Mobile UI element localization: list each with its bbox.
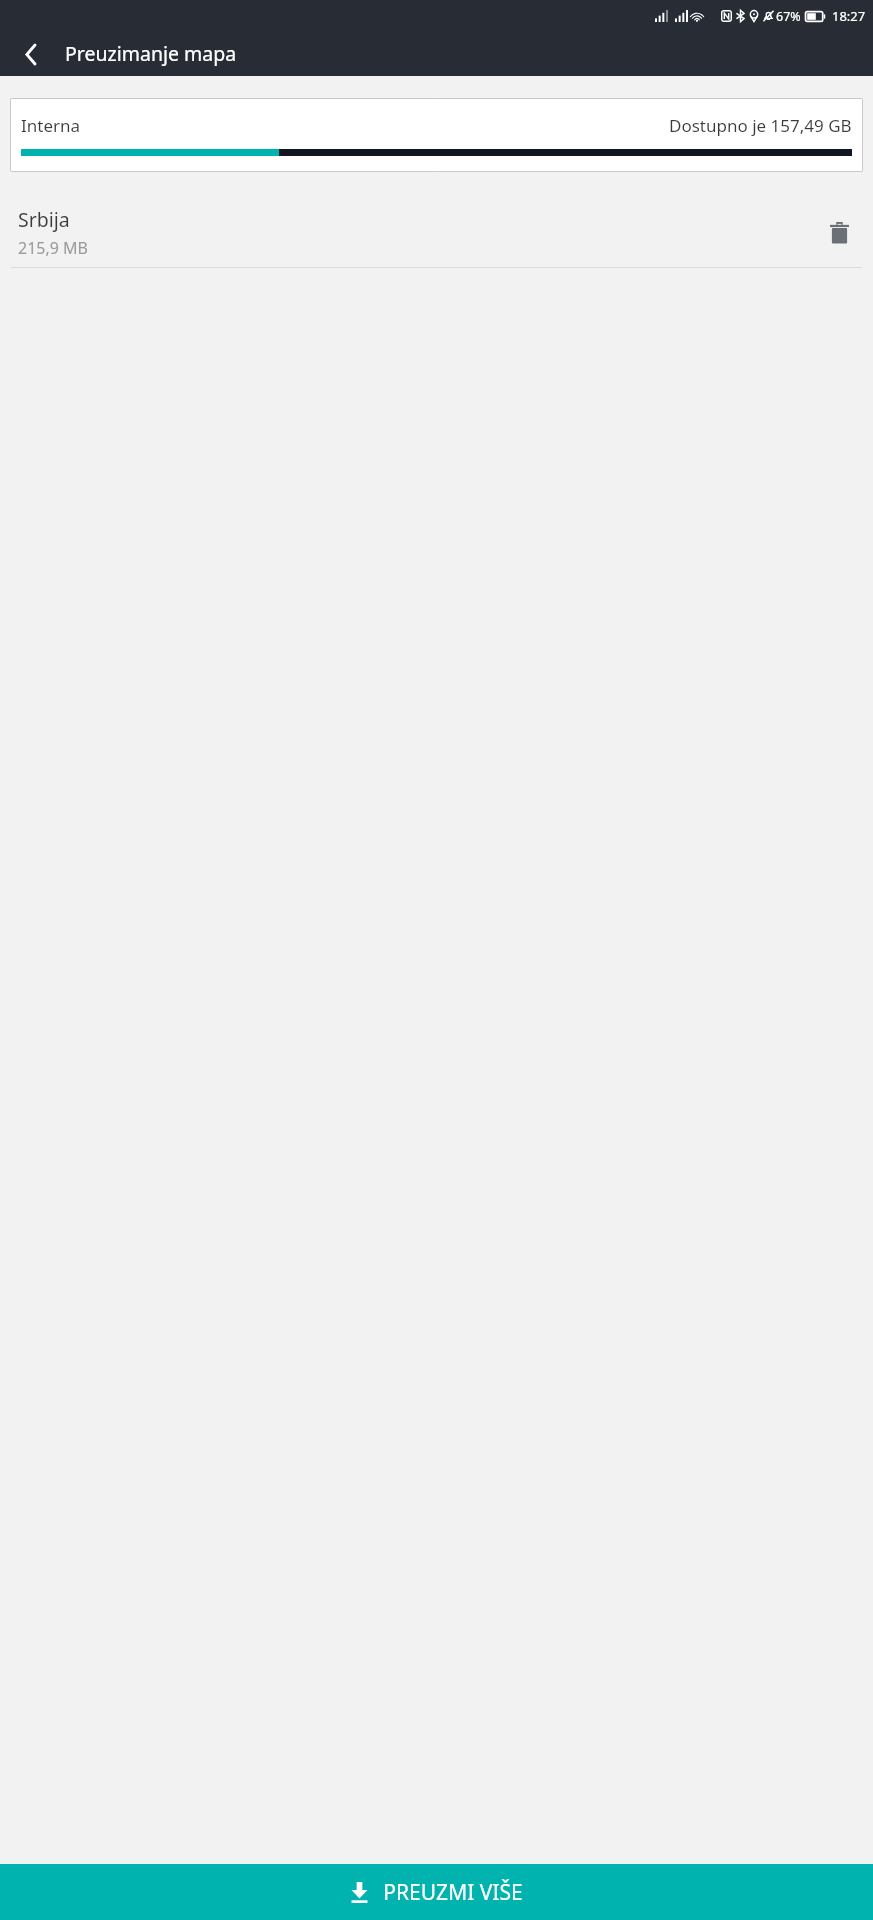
button[interactable]: Interna — [10, 98, 863, 172]
staticText: 67% — [776, 8, 801, 25]
button[interactable]: PREUZMI VIŠE — [0, 1864, 873, 1920]
button[interactable]: Back — [10, 33, 52, 75]
staticText: Dostupno je 157,49 GB — [669, 114, 852, 137]
button[interactable]: Srbija — [0, 200, 873, 267]
staticText: Preuzimanje mapa — [65, 40, 237, 67]
button[interactable]: Delete — [817, 211, 861, 255]
staticText: 18:27 — [832, 7, 866, 25]
staticText: Interna — [21, 114, 81, 137]
staticText: PREUZMI VIŠE — [383, 1878, 523, 1907]
staticText: 215,9 MB — [18, 237, 88, 259]
staticText: Srbija — [18, 206, 70, 233]
